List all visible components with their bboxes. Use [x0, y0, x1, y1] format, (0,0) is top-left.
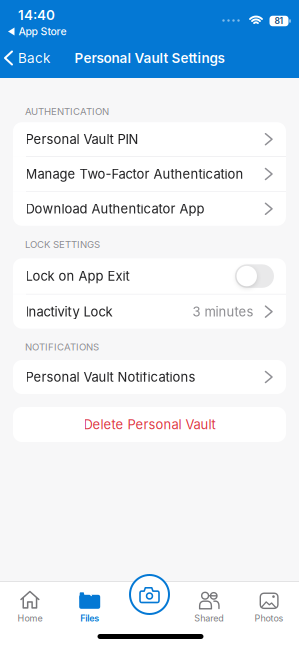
staticText: Personal Vault Settings — [74, 50, 224, 66]
button[interactable]: Lock on App Exit — [13, 258, 286, 294]
staticText: Personal Vault PIN — [25, 131, 138, 147]
button[interactable]: Inactivity Lock — [13, 295, 286, 329]
staticText: Files — [80, 613, 99, 624]
button[interactable]: Photos — [241, 586, 297, 627]
staticText: Manage Two-Factor Authentication — [25, 166, 243, 182]
staticText: Photos — [255, 613, 284, 624]
button[interactable]: Delete Personal Vault — [13, 407, 286, 442]
staticText: 3 minutes — [192, 304, 253, 319]
button[interactable]: Scan or take a photo — [129, 574, 170, 615]
button[interactable]: Back — [0, 50, 50, 66]
staticText: Lock on App Exit — [25, 268, 129, 284]
staticText: Home — [17, 613, 42, 624]
button[interactable]: Download Authenticator App — [13, 192, 286, 226]
staticText: Download Authenticator App — [25, 201, 204, 217]
staticText: Inactivity Lock — [25, 304, 112, 319]
staticText: App Store — [18, 25, 66, 38]
staticText: Delete Personal Vault — [83, 417, 215, 432]
staticText: 14:40 — [18, 7, 55, 23]
button[interactable]: Home — [2, 586, 58, 627]
button[interactable]: Manage Two-Factor Authentication — [13, 157, 286, 191]
button[interactable]: Files — [62, 586, 118, 627]
staticText: NOTIFICATIONS — [25, 341, 99, 353]
staticText: 81 — [274, 16, 283, 26]
staticText: LOCK SETTINGS — [25, 239, 100, 250]
staticText: Personal Vault Notifications — [25, 369, 195, 385]
button[interactable]: Shared — [181, 586, 237, 627]
staticText: Back — [18, 50, 50, 66]
button[interactable]: Personal Vault PIN — [13, 122, 286, 156]
button[interactable]: Personal Vault Notifications — [13, 360, 286, 394]
staticText: AUTHENTICATION — [25, 106, 109, 117]
staticText: Shared — [194, 613, 224, 624]
